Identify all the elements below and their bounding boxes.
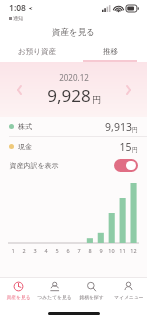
staticText: 株式 xyxy=(18,122,32,131)
staticText: 8 xyxy=(88,247,92,254)
button[interactable]: 資産内訳を表示 xyxy=(0,156,147,175)
button[interactable]: 資産を見る xyxy=(0,278,36,300)
staticText: お預り資産 xyxy=(18,47,56,56)
button[interactable]: 現金 xyxy=(0,137,147,156)
staticText: 円 xyxy=(92,94,101,105)
staticText: 9,913 xyxy=(105,120,132,134)
staticText: 3 xyxy=(33,247,37,254)
staticText: 円 xyxy=(132,146,138,154)
button[interactable]: 銘柄を探す xyxy=(73,278,110,300)
staticText: 6 xyxy=(66,247,70,254)
button[interactable]: 次の月 xyxy=(117,79,139,101)
staticText: 9 xyxy=(99,247,103,254)
staticText: 11 xyxy=(119,247,126,254)
staticText: 2 xyxy=(22,247,26,254)
staticText: 資産内訳を表示 xyxy=(9,161,59,170)
button[interactable]: つみたてを見る xyxy=(36,278,73,300)
staticText: 10 xyxy=(108,247,115,254)
staticText: 5 xyxy=(55,247,59,254)
button[interactable]: 株式 xyxy=(0,117,147,136)
staticText: 4 xyxy=(44,247,48,254)
staticText: マイメニュー xyxy=(114,294,144,300)
staticText: 12 xyxy=(130,247,137,254)
staticText: 7 xyxy=(77,247,81,254)
staticText: 15 xyxy=(119,140,132,154)
staticText: 9,928 xyxy=(47,84,91,107)
staticText: 1 xyxy=(11,247,15,254)
button[interactable]: お預り資産 xyxy=(0,42,73,62)
staticText: 通知 xyxy=(13,15,23,21)
staticText: 資産を見る xyxy=(6,294,31,300)
staticText: 円 xyxy=(132,126,138,134)
staticText: 現金 xyxy=(18,142,32,151)
button[interactable]: マイメニュー xyxy=(110,278,147,300)
staticText: 銘柄を探す xyxy=(79,294,104,300)
staticText: 推移 xyxy=(103,47,118,56)
button[interactable]: 前の月 xyxy=(8,79,30,101)
button[interactable]: 推移 xyxy=(73,42,147,62)
staticText: 2020.12 xyxy=(59,72,89,83)
staticText: 資産を見る xyxy=(52,27,95,38)
staticText: 1:08 xyxy=(9,2,26,14)
staticText: つみたてを見る xyxy=(37,294,72,300)
